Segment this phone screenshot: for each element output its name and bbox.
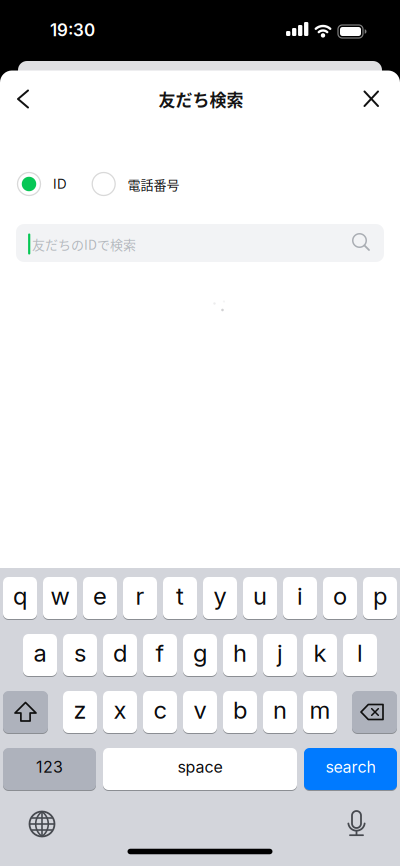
staticText: j	[277, 638, 283, 667]
staticText: ID	[53, 176, 67, 192]
button[interactable]: m	[303, 690, 337, 733]
button[interactable]: 電話番号	[92, 170, 182, 198]
button[interactable]: h	[223, 633, 257, 676]
staticText: a	[33, 638, 46, 667]
button[interactable]: z	[63, 690, 97, 733]
button[interactable]: e	[83, 576, 117, 619]
staticText: t	[176, 581, 184, 610]
staticText: s	[74, 638, 86, 667]
staticText: n	[273, 695, 287, 724]
staticText: d	[113, 638, 127, 667]
button[interactable]: space	[103, 747, 297, 790]
button[interactable]: c	[143, 690, 177, 733]
button[interactable]: k	[303, 633, 337, 676]
button[interactable]: a	[23, 633, 57, 676]
button[interactable]: 123	[3, 747, 96, 790]
button[interactable]: d	[103, 633, 137, 676]
button[interactable]: Shift	[3, 690, 48, 733]
button[interactable]: r	[123, 576, 157, 619]
button[interactable]: ID	[15, 170, 75, 198]
staticText: o	[333, 581, 347, 610]
staticText: 123	[36, 757, 63, 777]
button[interactable]: o	[323, 576, 357, 619]
button[interactable]: q	[3, 576, 37, 619]
staticText: u	[253, 581, 267, 610]
staticText: m	[309, 695, 330, 724]
button[interactable]: f	[143, 633, 177, 676]
staticText: p	[373, 581, 387, 610]
button[interactable]: p	[363, 576, 397, 619]
button[interactable]: y	[203, 576, 237, 619]
staticText: g	[193, 638, 207, 667]
button[interactable]: Delete	[352, 690, 397, 733]
button[interactable]: g	[183, 633, 217, 676]
staticText: 友だち検索	[158, 87, 243, 111]
button[interactable]: Switch keyboard	[28, 810, 56, 838]
button[interactable]: i	[283, 576, 317, 619]
staticText: f	[155, 638, 164, 667]
staticText: 19:30	[50, 20, 95, 40]
button[interactable]: Close	[353, 85, 389, 113]
staticText: 友だちのIDで検索	[32, 235, 136, 253]
staticText: k	[313, 638, 326, 667]
staticText: c	[153, 695, 166, 724]
button[interactable]: s	[63, 633, 97, 676]
button[interactable]: v	[183, 690, 217, 733]
button[interactable]: Back	[5, 85, 41, 113]
staticText: v	[193, 695, 206, 724]
staticText: 電話番号	[127, 175, 179, 193]
staticText: q	[13, 581, 27, 610]
button[interactable]: u	[243, 576, 277, 619]
button[interactable]: l	[343, 633, 377, 676]
staticText: x	[113, 695, 126, 724]
staticText: e	[93, 581, 107, 610]
staticText: i	[297, 581, 303, 610]
button[interactable]: b	[223, 690, 257, 733]
staticText: l	[357, 638, 363, 667]
button[interactable]: n	[263, 690, 297, 733]
button[interactable]: w	[43, 576, 77, 619]
staticText: z	[73, 695, 86, 724]
staticText: r	[135, 581, 144, 610]
button[interactable]: x	[103, 690, 137, 733]
staticText: w	[50, 581, 69, 610]
staticText: search	[325, 757, 375, 777]
staticText: b	[233, 695, 247, 724]
button[interactable]: search	[304, 747, 397, 790]
staticText: space	[177, 757, 222, 777]
button[interactable]: t	[163, 576, 197, 619]
staticText: y	[213, 581, 226, 610]
button[interactable]: Dictation	[346, 810, 366, 838]
button[interactable]: j	[263, 633, 297, 676]
button[interactable]: 友だちのIDで検索	[16, 224, 384, 262]
staticText: h	[233, 638, 247, 667]
